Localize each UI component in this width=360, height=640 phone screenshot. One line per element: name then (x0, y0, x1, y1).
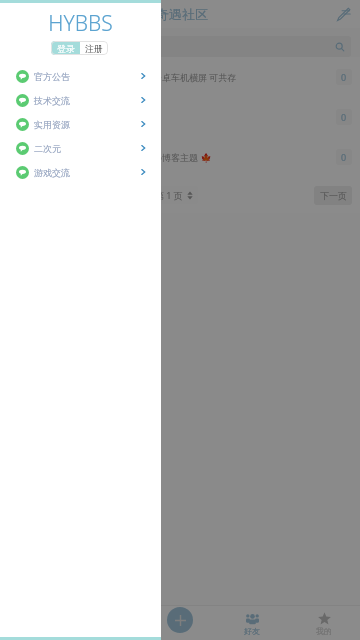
button[interactable]: 0 (0, 97, 360, 137)
staticText: 好友 (244, 626, 260, 636)
staticText: 登录 (57, 43, 75, 54)
button[interactable]: Hacho博客主题 🍁 (0, 137, 360, 177)
button[interactable]: 发现 (72, 605, 144, 640)
staticText: 下一页 (320, 190, 347, 201)
button[interactable]: Compose post (334, 5, 352, 23)
staticText: 注册 (85, 43, 103, 54)
staticText: 0 (341, 111, 347, 123)
button[interactable]: 好友 (216, 605, 288, 640)
button[interactable]: 注册 (80, 41, 108, 55)
staticText: HYBBS (0, 9, 161, 38)
staticText: 官方公告 (34, 71, 70, 82)
button[interactable]: 我的 (288, 605, 360, 640)
button[interactable]: Add post (167, 607, 193, 633)
staticText: 0 (341, 151, 347, 163)
staticText: 游戏交流 (34, 167, 70, 178)
staticText: 二次元 (34, 143, 61, 154)
button[interactable]: 第 1 页 (150, 186, 198, 204)
button[interactable]: 游戏交流 (0, 160, 161, 184)
staticText: 第 1 页 (155, 189, 183, 201)
button[interactable]: 【教程】安卓车机横屏 可共存 (0, 57, 360, 97)
staticText: 【教程】安卓车机横屏 可共存 (117, 71, 237, 83)
staticText: 我的 (316, 626, 332, 636)
staticText: 实用资源 (34, 119, 70, 130)
staticText: Hacho博客主题 🍁 (135, 151, 212, 163)
button[interactable]: 技术交流 (0, 88, 161, 112)
button[interactable]: 实用资源 (0, 112, 161, 136)
staticText: 技术交流 (34, 95, 70, 106)
button[interactable]: 官方公告 (0, 64, 161, 88)
button[interactable]: 二次元 (0, 136, 161, 160)
staticText: 0 (341, 71, 347, 83)
staticText: 奇遇社区 (156, 6, 208, 22)
button[interactable]: 下一页 (314, 186, 352, 205)
button[interactable]: 首页 (0, 605, 72, 640)
button[interactable]: Search (9, 36, 351, 57)
button[interactable]: 登录 (51, 41, 80, 55)
